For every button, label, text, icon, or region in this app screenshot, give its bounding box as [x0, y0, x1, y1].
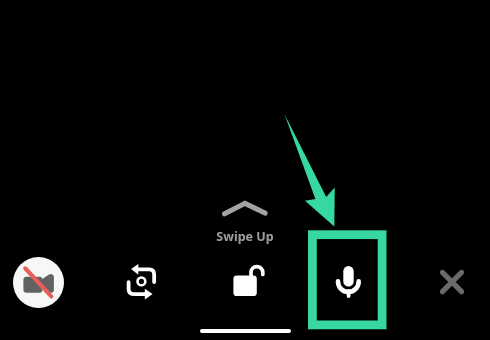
button[interactable]: Unlocked — [233, 264, 267, 297]
button[interactable]: Turn camera on — [13, 257, 64, 308]
button[interactable]: Close — [437, 267, 467, 297]
staticText: Swipe Up — [216, 228, 274, 245]
button[interactable]: Flip camera — [127, 264, 156, 300]
button[interactable]: Mute microphone — [336, 265, 364, 298]
button[interactable]: Swipe Up — [214, 196, 276, 244]
